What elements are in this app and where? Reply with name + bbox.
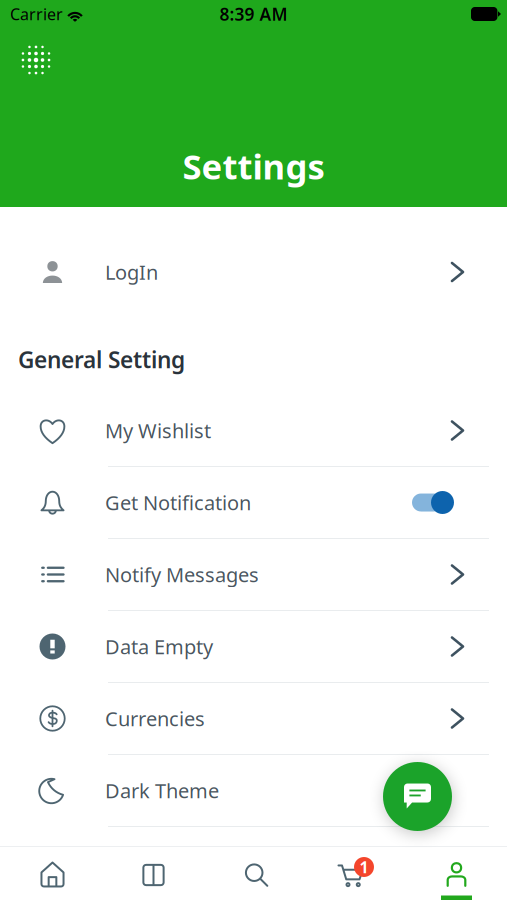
button[interactable]: Cart [303,847,404,900]
button[interactable]: Notify Messages [0,539,507,610]
staticText: 1 [359,856,368,878]
button[interactable]: Search [202,847,303,900]
button[interactable]: Chat [383,762,452,831]
staticText: Dark Theme [105,777,219,804]
button[interactable]: Categories [101,847,202,900]
button[interactable]: Home [0,847,101,900]
button[interactable]: Currencies [0,683,507,754]
staticText: Notify Messages [105,561,259,588]
button[interactable]: LogIn [0,240,507,304]
staticText: Settings [182,143,324,189]
staticText: Currencies [105,705,205,732]
staticText: Carrier [10,3,63,25]
staticText: 8:39 AM [219,2,287,25]
button[interactable]: Data Empty [0,611,507,682]
staticText: General Setting [18,344,185,374]
staticText: Data Empty [105,633,213,660]
button[interactable]: My Wishlist [0,395,507,466]
button[interactable]: Menu [11,35,61,85]
staticText: LogIn [105,259,158,285]
button[interactable]: Get Notification [0,467,507,538]
button[interactable]: Dark Theme [0,755,507,826]
staticText: My Wishlist [105,417,211,444]
staticText: Get Notification [105,489,251,516]
button[interactable]: Account [404,847,507,900]
